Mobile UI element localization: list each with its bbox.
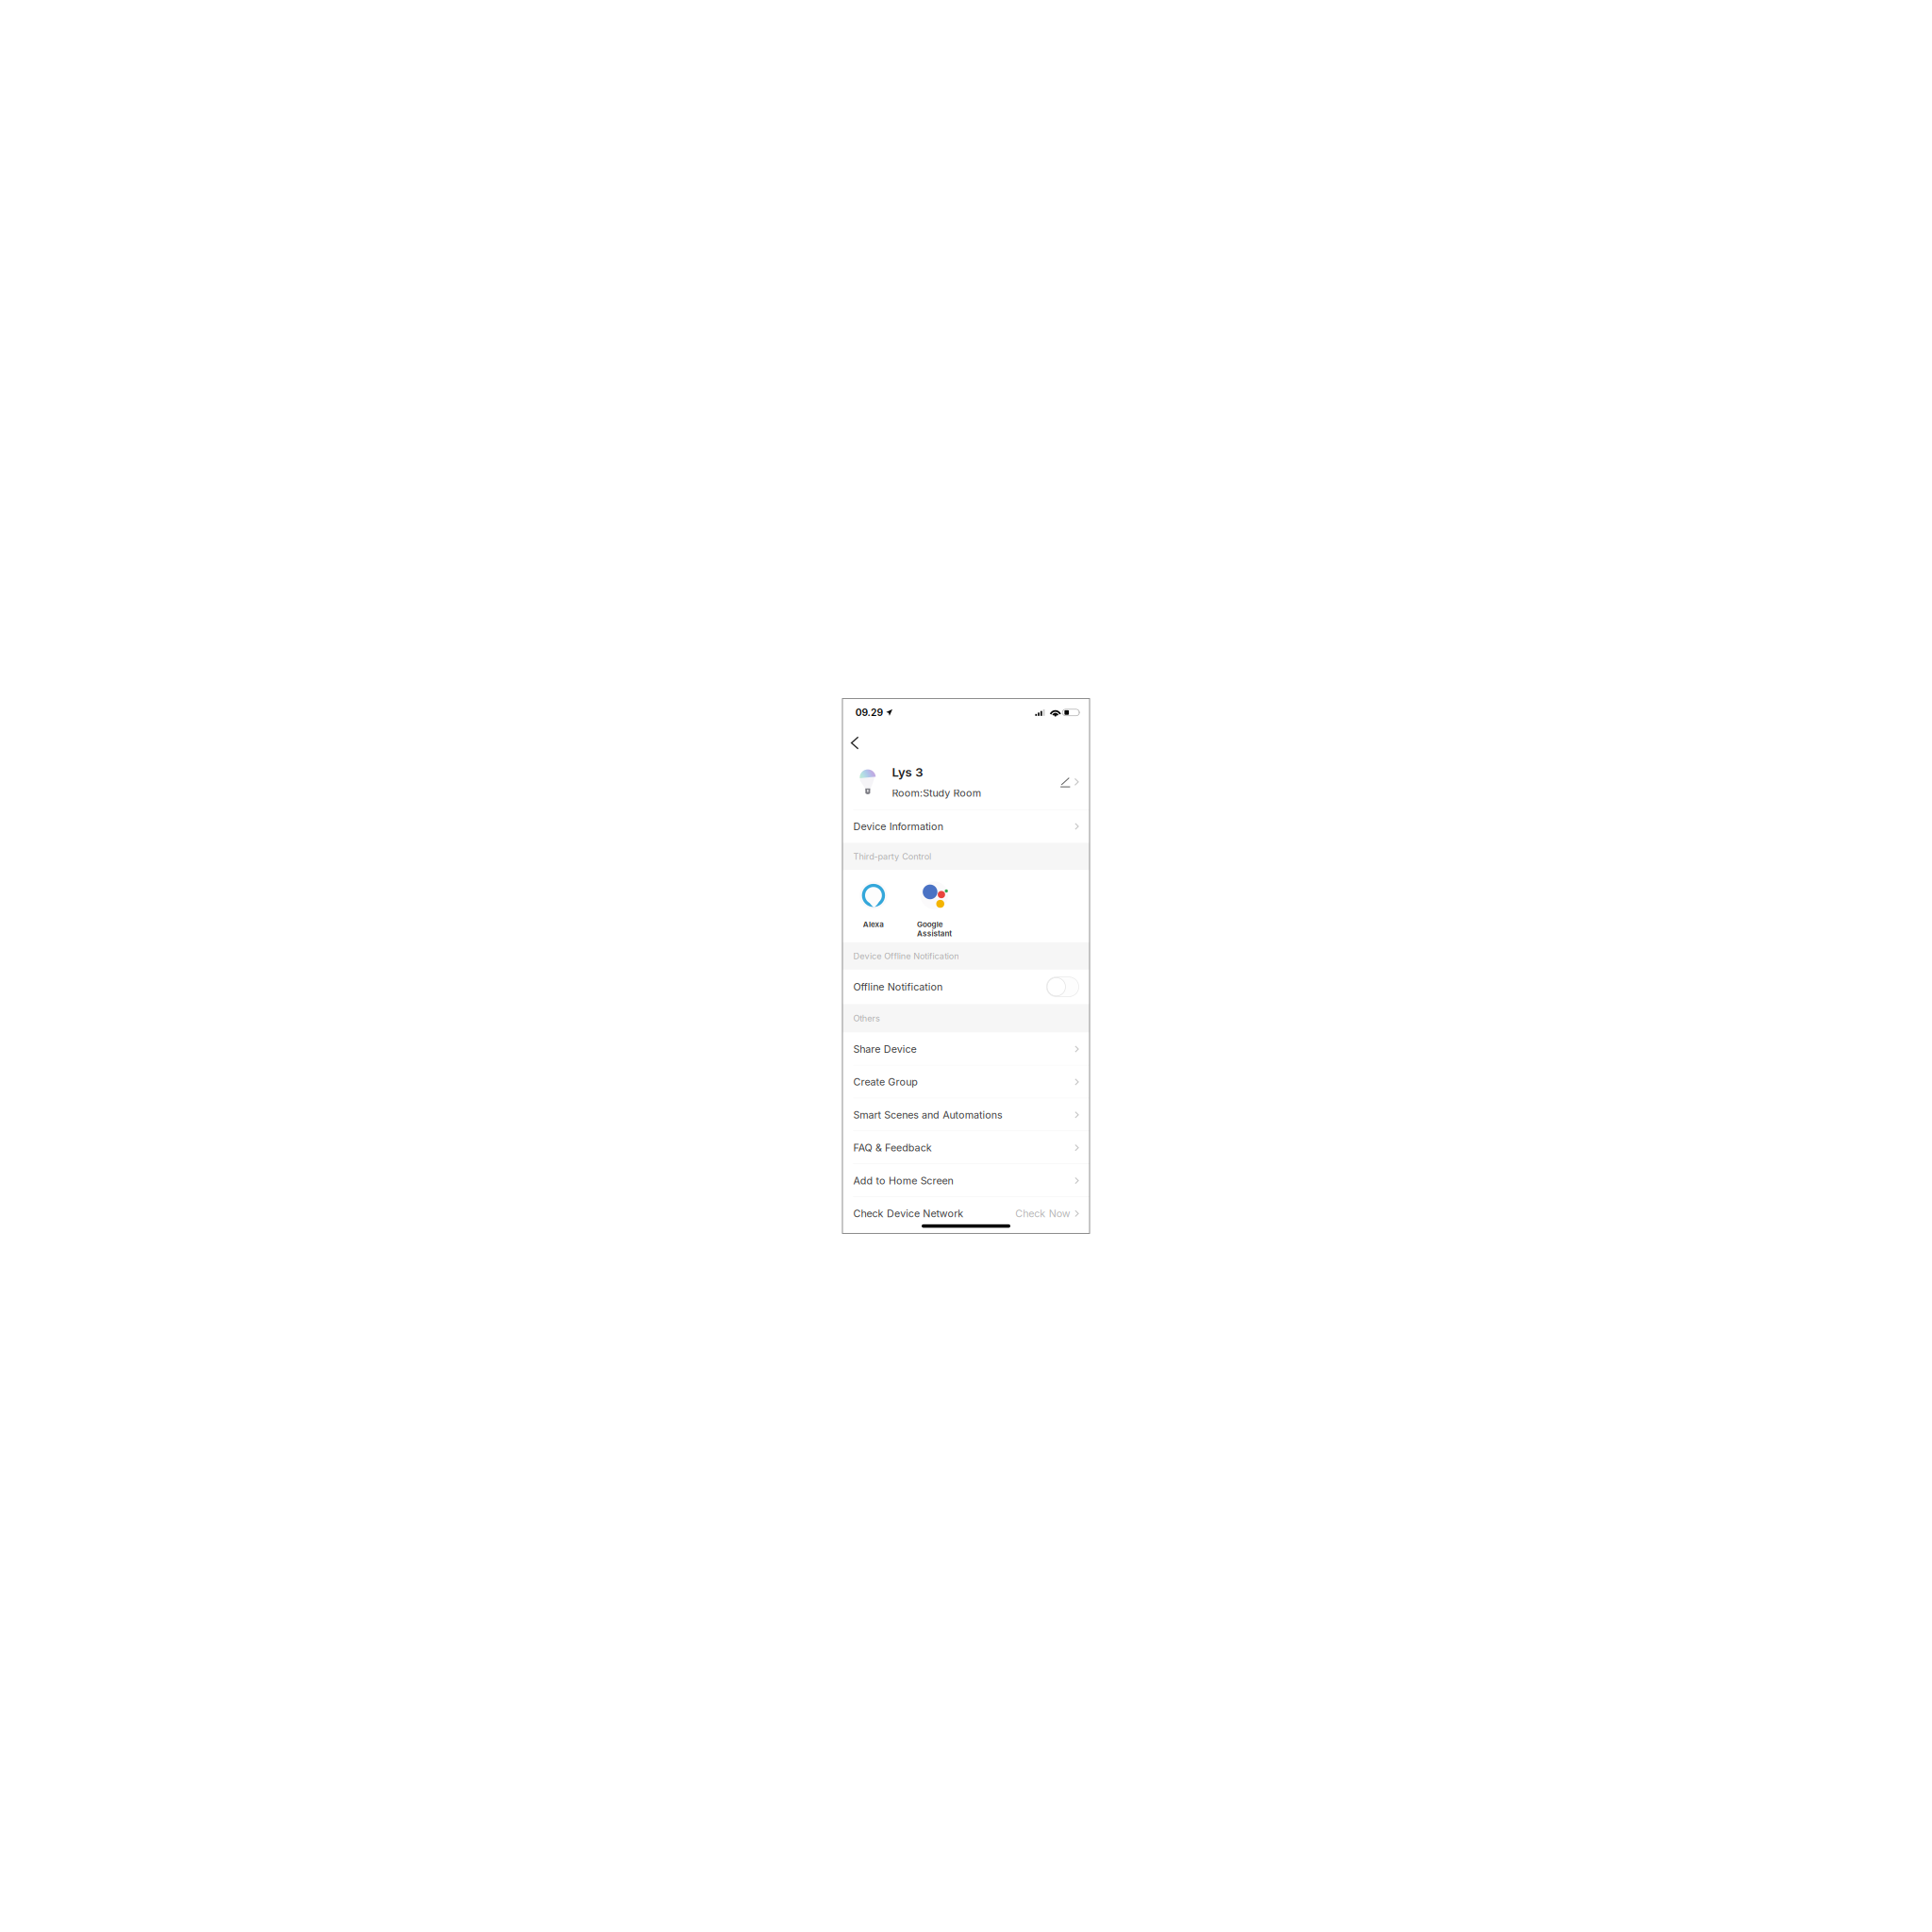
- button[interactable]: Offline Notification: [1086, 982, 1134, 1012]
- button[interactable]: Lys 3: [782, 651, 1150, 733]
- staticText: Share Device: [798, 1081, 892, 1099]
- staticText: Device Information: [798, 749, 932, 767]
- staticText: Google Assistant: [893, 897, 945, 925]
- staticText: Room:Study Room: [856, 699, 989, 718]
- staticText: Device Offline Notification: [798, 943, 956, 959]
- button[interactable]: Device Information: [782, 734, 1150, 783]
- staticText: Alexa: [813, 897, 844, 911]
- staticText: Third-party Control: [798, 795, 914, 811]
- button[interactable]: Alexa: [783, 823, 874, 931]
- button[interactable]: Share Device: [782, 1065, 1150, 1114]
- button[interactable]: Google Assistant: [874, 823, 964, 931]
- staticText: Smart Scenes and Automations: [798, 1178, 1020, 1197]
- staticText: Create Group: [798, 1129, 894, 1148]
- button[interactable]: Smart Scenes and Automations: [782, 1163, 1150, 1212]
- button[interactable]: FAQ & Feedback: [782, 1212, 1150, 1261]
- button[interactable]: Create Group: [782, 1114, 1150, 1163]
- staticText: Offline Notification: [798, 988, 931, 1006]
- staticText: FAQ & Feedback: [798, 1227, 915, 1246]
